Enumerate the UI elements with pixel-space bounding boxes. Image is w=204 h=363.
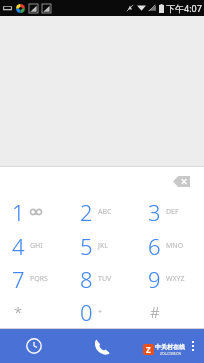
staticText: 0 (80, 297, 93, 327)
staticText: 4 (12, 231, 25, 261)
button[interactable]: Call history (0, 329, 68, 363)
staticText: Z (146, 344, 151, 355)
staticText: ZOL.COM.CN (160, 351, 181, 356)
button[interactable]: 5 (68, 229, 136, 262)
button[interactable]: 0 (68, 295, 136, 328)
staticText: 9 (148, 264, 161, 294)
button[interactable]: # (136, 295, 204, 328)
button[interactable]: 2 (68, 195, 136, 229)
staticText: * (14, 302, 23, 322)
staticText: 7 (12, 264, 25, 294)
staticText: 中关村在线 (155, 343, 185, 351)
button[interactable]: 7 (0, 262, 68, 295)
button[interactable]: Backspace (166, 169, 196, 193)
button[interactable]: 9 (136, 262, 204, 295)
staticText: WXYZ (166, 274, 185, 284)
button[interactable]: More options (182, 329, 204, 363)
staticText: PQRS (30, 274, 48, 284)
staticText: JKL (98, 241, 108, 251)
staticText: 1 (12, 197, 25, 227)
staticText: 下午4:07 (166, 2, 202, 14)
button[interactable]: Dial (68, 329, 136, 363)
staticText: DEF (166, 207, 179, 217)
staticText: ABC (98, 207, 112, 217)
button[interactable]: 3 (136, 195, 204, 229)
staticText: + (98, 307, 103, 317)
staticText: TUV (98, 274, 112, 284)
button[interactable]: 4 (0, 229, 68, 262)
button[interactable]: 1 (0, 195, 68, 229)
button[interactable]: * (0, 295, 68, 328)
staticText: 8 (80, 264, 93, 294)
staticText: GHI (30, 241, 43, 251)
staticText: 3 (148, 197, 161, 227)
staticText: 5 (80, 231, 93, 261)
staticText: 6 (148, 231, 161, 261)
staticText: # (150, 302, 160, 322)
button[interactable]: 6 (136, 229, 204, 262)
button[interactable]: 8 (68, 262, 136, 295)
staticText: 2 (80, 197, 93, 227)
staticText: MNO (166, 241, 184, 251)
